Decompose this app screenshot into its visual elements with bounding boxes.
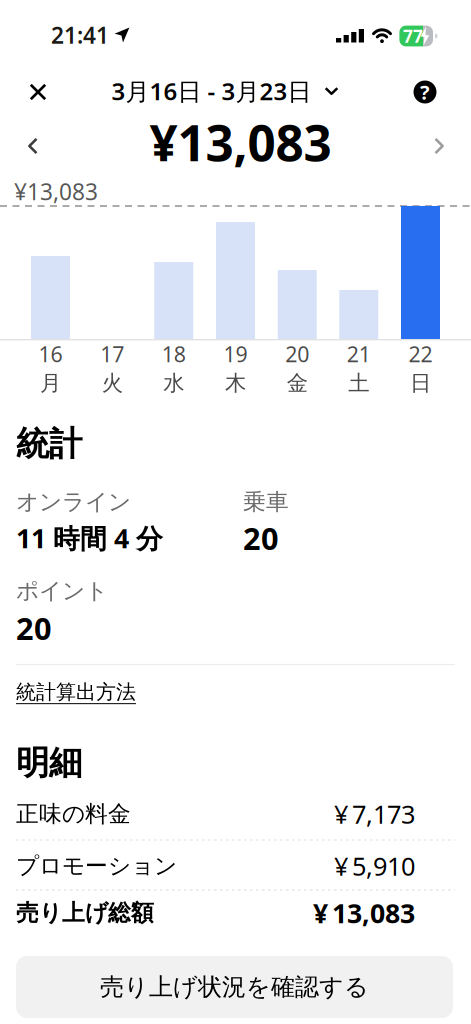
staticText: 17 — [100, 340, 124, 368]
button[interactable]: 次の週 — [434, 137, 444, 154]
staticText: 売り上げ状況を確認する — [100, 972, 369, 1002]
staticText: 77 — [403, 24, 423, 47]
staticText: ¥ 13,083 — [313, 895, 415, 931]
staticText: 19 — [223, 340, 247, 368]
staticText: 木 — [225, 370, 246, 396]
staticText: 22 — [408, 340, 432, 368]
staticText: ¥13,083 — [149, 109, 331, 175]
staticText: 正味の料金 — [16, 800, 131, 828]
staticText: 水 — [163, 370, 184, 396]
button[interactable]: 統計算出方法 — [16, 680, 136, 704]
staticText: 3月16日 - 3月23日 — [111, 75, 311, 107]
staticText: 日 — [410, 370, 431, 396]
staticText: ポイント — [16, 577, 108, 605]
staticText: ¥13,083 — [14, 176, 98, 206]
staticText: 金 — [287, 370, 308, 396]
button[interactable]: 前の週 — [28, 137, 38, 154]
staticText: 20 — [243, 518, 279, 558]
staticText: 18 — [162, 340, 186, 368]
staticText: ¥ 7,173 — [334, 797, 415, 831]
button[interactable]: ヘルプ — [413, 79, 436, 105]
button[interactable]: 売り上げ状況を確認する — [16, 956, 453, 1018]
staticText: 16 — [38, 340, 62, 368]
staticText: 20 — [16, 608, 52, 648]
staticText: 21:41 — [51, 20, 109, 50]
staticText: 11 時間 4 分 — [16, 520, 163, 556]
staticText: 20 — [285, 340, 309, 368]
staticText: 火 — [102, 370, 123, 396]
staticText: 月 — [40, 370, 61, 396]
button[interactable]: 3月16日 - 3月23日 — [111, 75, 338, 107]
staticText: オンライン — [16, 488, 131, 516]
staticText: 売り上げ総額 — [16, 899, 154, 927]
staticText: ¥ 5,910 — [334, 849, 415, 883]
staticText: 統計 — [16, 423, 82, 464]
staticText: 21 — [347, 340, 371, 368]
staticText: 統計算出方法 — [16, 680, 136, 704]
button[interactable]: 閉じる — [28, 82, 47, 101]
staticText: 明細 — [16, 742, 82, 783]
staticText: 乗車 — [243, 488, 289, 516]
staticText: プロモーション — [16, 852, 177, 880]
staticText: ? — [420, 79, 430, 105]
staticText: 土 — [348, 370, 369, 396]
